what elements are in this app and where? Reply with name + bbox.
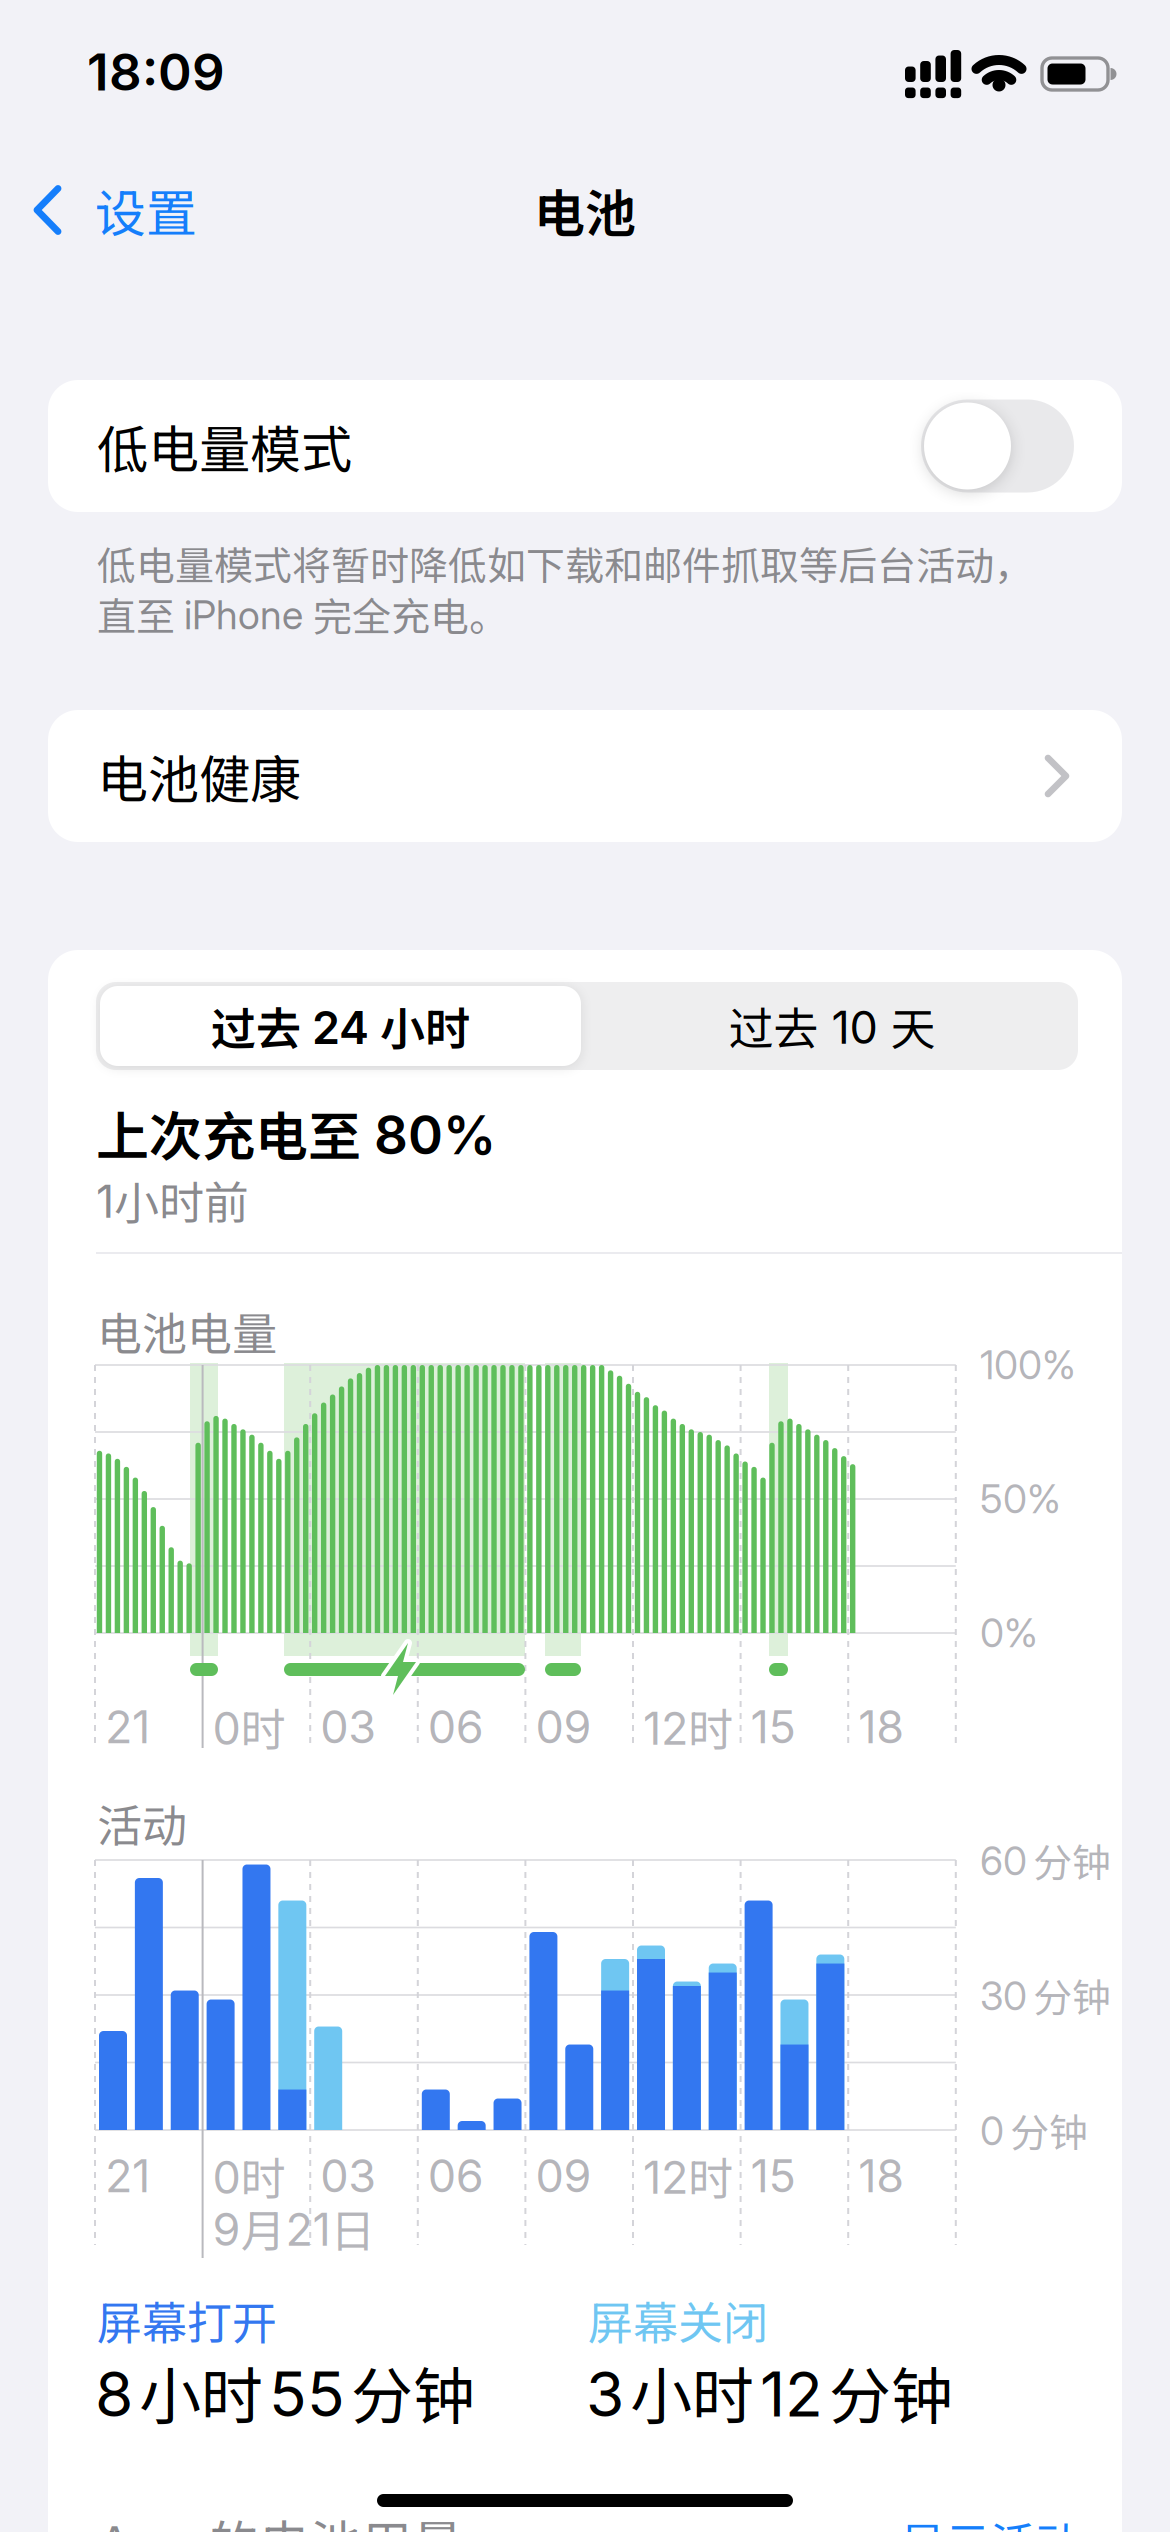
staticText: 12时	[643, 2144, 733, 2208]
staticText: 过去 24 小时	[211, 994, 470, 1058]
staticText: 15	[751, 2149, 796, 2203]
staticText: 100%	[980, 1342, 1076, 1388]
button[interactable]: 显示活动	[900, 2509, 1080, 2532]
staticText: 09	[535, 2149, 591, 2203]
staticText: 电池健康	[97, 740, 301, 812]
staticText: 8 小时 55 分钟	[95, 2348, 475, 2436]
button[interactable]: 返回设置	[33, 174, 197, 246]
staticText: 06	[428, 2149, 484, 2203]
staticText: 60 分钟	[980, 1832, 1111, 1888]
staticText: 屏幕关闭	[588, 2288, 768, 2352]
staticText: 0 分钟	[980, 2102, 1088, 2158]
staticText: 09	[535, 1700, 591, 1754]
staticText: 21	[105, 1700, 150, 1754]
staticText: 过去 10 天	[728, 994, 935, 1058]
staticText: 03	[320, 2149, 376, 2203]
staticText: 0时	[213, 2144, 286, 2208]
staticText: 屏幕打开	[97, 2288, 277, 2352]
staticText: 12时	[643, 1695, 733, 1759]
staticText: 15	[751, 1700, 796, 1754]
staticText: 3 小时 12 分钟	[586, 2348, 953, 2436]
staticText: 显示活动	[900, 2509, 1080, 2532]
staticText: 03	[320, 1700, 376, 1754]
button[interactable]: 低电量模式	[921, 399, 1074, 492]
staticText: App 的电池用量	[97, 2505, 463, 2532]
button[interactable]: 过去 24 小时	[100, 986, 581, 1066]
staticText: 18	[858, 2149, 904, 2203]
staticText: 上次充电至 80%	[96, 1096, 496, 1170]
staticText: 直至 iPhone 完全充电。	[97, 586, 508, 642]
staticText: 电池电量	[97, 1299, 277, 1363]
staticText: 9月21日	[213, 2196, 376, 2260]
staticText: 21	[105, 2149, 150, 2203]
staticText: 0%	[980, 1610, 1038, 1656]
staticText: 活动	[97, 1791, 187, 1855]
staticText: 设置	[95, 174, 197, 246]
staticText: 0时	[213, 1695, 286, 1759]
staticText: 18	[858, 1700, 904, 1754]
staticText: 18:09	[87, 42, 225, 102]
staticText: 低电量模式	[97, 410, 352, 482]
staticText: 06	[428, 1700, 484, 1754]
staticText: 50%	[980, 1476, 1061, 1522]
button[interactable]: 过去 10 天	[587, 982, 1077, 1070]
staticText: 电池	[534, 174, 636, 246]
staticText: 1小时前	[96, 1168, 249, 1232]
button[interactable]: 电池健康	[48, 710, 1122, 842]
staticText: 30 分钟	[980, 1967, 1111, 2023]
staticText: 低电量模式将暂时降低如下载和邮件抓取等后台活动，	[97, 535, 1033, 591]
